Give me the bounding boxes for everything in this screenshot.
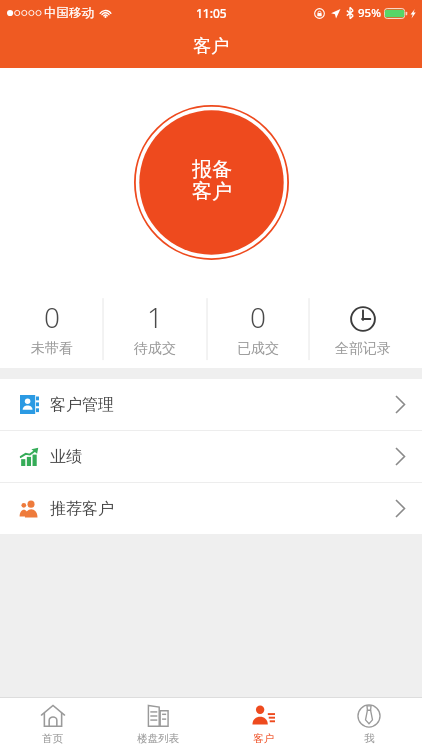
staticText: 推荐客户: [50, 499, 114, 519]
staticText: 11:05: [196, 5, 227, 21]
staticText: 已成交: [237, 340, 279, 358]
staticText: 全部记录: [335, 340, 391, 358]
button[interactable]: 我: [316, 698, 422, 750]
staticText: 中国移动: [44, 5, 94, 21]
staticText: 0: [44, 298, 60, 336]
staticText: 待成交: [134, 340, 176, 358]
button[interactable]: 全部记录: [309, 296, 422, 368]
staticText: 1: [147, 298, 163, 336]
button[interactable]: 首页: [0, 698, 105, 750]
staticText: 首页: [42, 732, 63, 745]
staticText: 95%: [358, 5, 381, 21]
staticText: 客户: [193, 35, 229, 58]
staticText: 未带看: [31, 340, 73, 358]
button[interactable]: 推荐客户: [0, 483, 422, 534]
staticText: 报备 客户: [192, 157, 232, 204]
staticText: 0: [250, 298, 266, 336]
button[interactable]: 楼盘列表: [105, 698, 210, 750]
button[interactable]: 客户管理: [0, 379, 422, 430]
button[interactable]: 业绩: [0, 431, 422, 482]
button[interactable]: 1: [103, 296, 207, 368]
button[interactable]: 0: [207, 296, 309, 368]
staticText: 客户管理: [50, 395, 114, 415]
staticText: 我: [364, 732, 375, 745]
button[interactable]: 客户: [210, 698, 316, 750]
staticText: 业绩: [50, 447, 82, 467]
button[interactable]: 0: [0, 296, 103, 368]
staticText: 客户: [253, 732, 274, 745]
button[interactable]: 报备 客户: [134, 105, 289, 260]
staticText: 楼盘列表: [137, 732, 179, 745]
